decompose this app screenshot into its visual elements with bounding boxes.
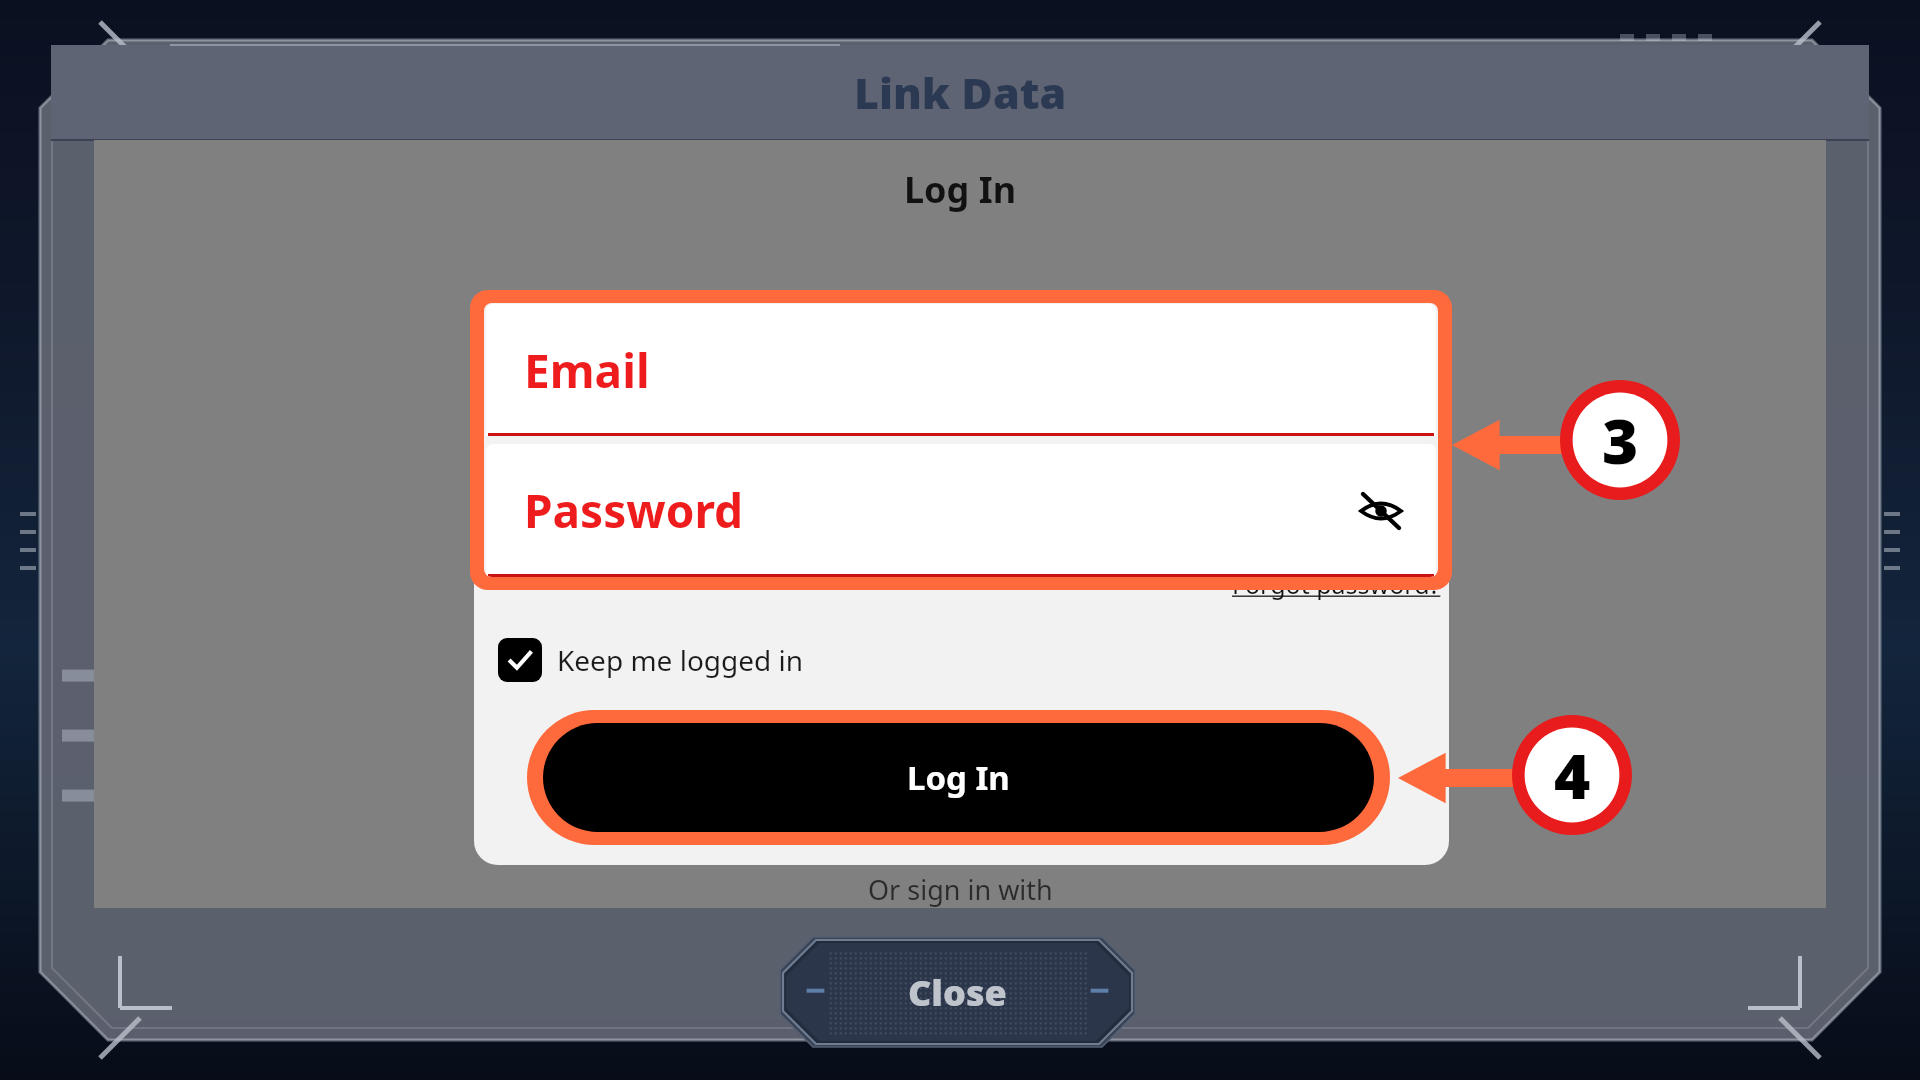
staticText: Password <box>524 479 744 542</box>
button[interactable]: Email <box>470 290 1452 590</box>
button[interactable]: Keep me logged in <box>498 638 804 682</box>
button[interactable]: Close <box>780 937 1135 1047</box>
button[interactable]: Forgot password? <box>1230 565 1443 603</box>
staticText: Or sign in with <box>868 871 1053 908</box>
staticText: Email <box>524 339 650 402</box>
staticText: Log In <box>907 755 1010 800</box>
button[interactable]: Show password <box>1356 486 1406 536</box>
staticText: Close <box>908 968 1007 1017</box>
staticText: Forgot password? <box>1232 567 1441 601</box>
staticText: 4 <box>1554 733 1591 817</box>
staticText: 3 <box>1602 398 1639 482</box>
button[interactable]: Password <box>486 444 1436 577</box>
button[interactable]: Log In <box>527 710 1390 845</box>
staticText: Link Data <box>854 63 1067 122</box>
staticText: Log In <box>904 165 1017 214</box>
button[interactable]: Email <box>486 304 1436 436</box>
staticText: Keep me logged in <box>557 641 804 679</box>
